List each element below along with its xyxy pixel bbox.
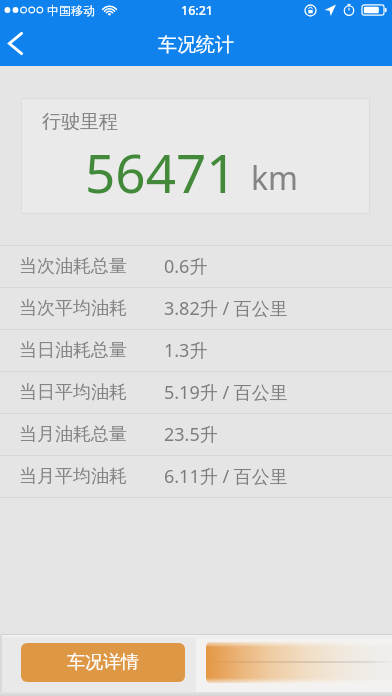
staticText: 0.6升 — [164, 254, 208, 279]
staticText: 车况详情 — [67, 651, 139, 674]
button[interactable]: 当次油耗总量 — [0, 246, 392, 287]
staticText: km — [251, 156, 299, 200]
button[interactable]: 当月油耗总量 — [0, 414, 392, 455]
button[interactable]: 当日油耗总量 — [0, 330, 392, 371]
staticText: 当月油耗总量 — [19, 423, 127, 446]
staticText: 当次平均油耗 — [19, 297, 127, 320]
staticText: 中国移动 — [47, 3, 95, 18]
staticText: 当日油耗总量 — [19, 339, 127, 362]
staticText: 16:21 — [181, 2, 214, 19]
staticText: 3.82升 / 百公里 — [164, 296, 288, 321]
staticText: 车况统计 — [158, 33, 234, 57]
button[interactable]: 车况详情 — [21, 643, 185, 682]
button[interactable]: 当月平均油耗 — [0, 456, 392, 497]
staticText: 5.19升 / 百公里 — [164, 380, 288, 405]
staticText: 行驶里程 — [42, 110, 118, 134]
button[interactable]: 当次平均油耗 — [0, 288, 392, 329]
staticText: 6.11升 / 百公里 — [164, 464, 288, 489]
button[interactable]: 当日平均油耗 — [0, 372, 392, 413]
staticText: 56471 — [85, 136, 237, 208]
button[interactable] — [206, 642, 392, 683]
staticText: 23.5升 — [164, 422, 218, 447]
staticText: 当次油耗总量 — [19, 255, 127, 278]
staticText: 1.3升 — [164, 338, 208, 363]
staticText: 当日平均油耗 — [19, 381, 127, 404]
button[interactable]: Back — [0, 20, 40, 66]
staticText: 当月平均油耗 — [19, 465, 127, 488]
